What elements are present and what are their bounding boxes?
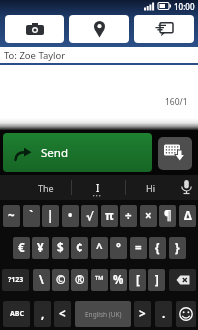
button[interactable] xyxy=(169,269,196,291)
staticText: ^ xyxy=(96,240,103,256)
staticText: × xyxy=(145,208,152,224)
staticText: Δ xyxy=(184,208,192,224)
button[interactable]: ~ xyxy=(3,205,20,227)
button[interactable] xyxy=(174,175,198,200)
button[interactable]: < xyxy=(54,301,71,327)
staticText: \ xyxy=(39,272,44,288)
staticText: © xyxy=(56,272,66,288)
button[interactable]: | xyxy=(42,205,59,227)
button[interactable]: × xyxy=(140,205,157,227)
button[interactable]: % xyxy=(110,269,127,291)
button[interactable] xyxy=(176,301,196,327)
button[interactable]: ABC xyxy=(3,301,30,327)
button[interactable]: , xyxy=(34,301,51,327)
button[interactable]: π xyxy=(101,205,118,227)
staticText: √ xyxy=(86,210,94,223)
button[interactable]: € xyxy=(13,237,30,259)
button[interactable]: $ xyxy=(52,237,69,259)
staticText: < xyxy=(59,306,66,322)
button[interactable] xyxy=(5,15,64,43)
button[interactable] xyxy=(134,15,194,43)
staticText: ] xyxy=(155,272,159,288)
button[interactable] xyxy=(69,15,129,43)
button[interactable]: } xyxy=(169,237,186,259)
button[interactable]: I xyxy=(72,175,124,200)
staticText: 160/1 xyxy=(165,96,188,108)
staticText: I xyxy=(96,181,100,195)
button[interactable]: Send xyxy=(3,133,152,172)
staticText: = xyxy=(135,240,142,256)
button[interactable]: ° xyxy=(110,237,127,259)
staticText: ¥ xyxy=(37,240,44,256)
button[interactable]: ^ xyxy=(91,237,108,259)
staticText: English (UK) xyxy=(85,310,122,319)
button[interactable]: { xyxy=(149,237,166,259)
button[interactable]: ¥ xyxy=(32,237,49,259)
button[interactable]: Δ xyxy=(179,205,196,227)
staticText: The xyxy=(38,182,54,194)
button[interactable]: [ xyxy=(129,269,146,291)
button[interactable]: © xyxy=(52,269,69,291)
button[interactable]: ¶ xyxy=(159,205,176,227)
button[interactable]: ¢ xyxy=(71,237,88,259)
staticText: ¶ xyxy=(164,208,172,224)
staticText: ® xyxy=(75,272,85,288)
staticText: ÷ xyxy=(125,208,132,224)
staticText: > xyxy=(139,306,146,322)
button[interactable]: ?123 xyxy=(2,269,29,291)
staticText: ™ xyxy=(95,272,104,288)
button[interactable]: ™ xyxy=(91,269,108,291)
staticText: { xyxy=(155,240,160,256)
button[interactable]: √ xyxy=(81,205,98,227)
staticText: [ xyxy=(136,272,140,288)
button[interactable]: ] xyxy=(148,269,165,291)
staticText: ¢ xyxy=(76,240,83,256)
staticText: ° xyxy=(116,240,121,256)
staticText: ?123 xyxy=(8,275,24,285)
button[interactable]: ` xyxy=(23,205,40,227)
staticText: € xyxy=(18,240,25,256)
staticText: Send xyxy=(41,145,68,161)
button[interactable]: ÷ xyxy=(120,205,137,227)
staticText: ABC xyxy=(10,309,24,319)
button[interactable]: = xyxy=(130,237,147,259)
staticText: $ xyxy=(57,240,64,256)
button[interactable]: ® xyxy=(71,269,88,291)
button[interactable]: The xyxy=(22,175,70,200)
button[interactable]: English (UK) xyxy=(75,301,131,327)
staticText: } xyxy=(175,240,180,256)
staticText: ` xyxy=(29,208,34,224)
staticText: , xyxy=(41,306,45,322)
button[interactable]: . xyxy=(155,301,172,327)
button[interactable]: Hi xyxy=(126,175,174,200)
staticText: π xyxy=(105,208,114,224)
button[interactable]: • xyxy=(62,205,79,227)
button[interactable]: > xyxy=(134,301,151,327)
staticText: . xyxy=(162,306,166,322)
staticText: % xyxy=(113,272,124,288)
button[interactable] xyxy=(158,137,192,170)
staticText: ~ xyxy=(8,208,15,224)
button[interactable]: \ xyxy=(33,269,50,291)
staticText: Hi xyxy=(146,182,155,194)
staticText: • xyxy=(68,208,73,224)
staticText: 10:00 xyxy=(174,1,195,12)
staticText: To: Zoe Taylor xyxy=(4,49,66,62)
staticText: | xyxy=(47,208,54,224)
